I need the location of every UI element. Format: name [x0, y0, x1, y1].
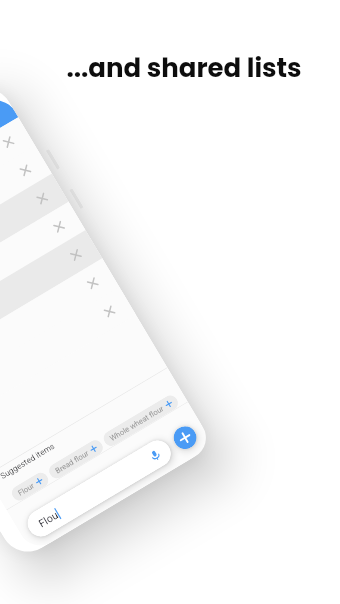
button[interactable]: Bread flour	[46, 437, 106, 481]
other: Voice input	[148, 448, 163, 463]
other: Delete item	[17, 162, 33, 178]
button[interactable]: Delete item	[0, 117, 35, 253]
button[interactable]: Flour	[9, 470, 51, 503]
staticText: Suggested items	[0, 441, 56, 481]
button[interactable]: Whole wheat flour	[101, 393, 181, 449]
other: Delete item	[34, 190, 50, 207]
other: Delete item	[68, 247, 84, 263]
button[interactable]: Delete item	[0, 174, 69, 310]
button[interactable]: Delete item	[0, 145, 52, 282]
button[interactable]: Delete item	[0, 202, 86, 338]
other: Delete item	[85, 275, 101, 291]
staticText: ...and shared lists	[66, 50, 302, 86]
button[interactable]: Flou	[22, 435, 176, 542]
other: Delete item	[51, 219, 67, 235]
button[interactable]: Delete item	[0, 258, 119, 395]
other: Delete item	[101, 303, 118, 319]
button[interactable]: Delete item	[0, 230, 102, 366]
staticText: Whole wheat flour	[108, 404, 166, 443]
button[interactable]: Delete item	[0, 286, 136, 423]
staticText: Bread flour	[54, 448, 90, 475]
other: Delete item	[0, 134, 17, 150]
button[interactable]: Add item	[169, 422, 201, 453]
staticText: Flou	[36, 508, 60, 530]
staticText: Flour	[16, 481, 36, 498]
